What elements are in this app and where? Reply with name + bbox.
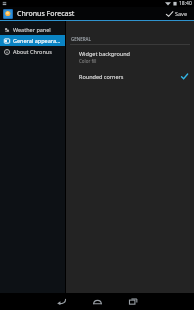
button[interactable]: Widget background (66, 48, 194, 66)
button[interactable]: Back (48, 293, 74, 310)
button[interactable]: Save (163, 8, 191, 19)
staticText: Color fill (79, 58, 97, 64)
staticText: 18:40 (179, 0, 192, 7)
staticText: Rounded corners (79, 73, 124, 80)
staticText: About Chronus (13, 48, 52, 55)
button[interactable]: Weather panel (0, 24, 65, 35)
button[interactable]: Home (84, 293, 110, 310)
button[interactable]: Recents (120, 293, 146, 310)
staticText: Save (175, 10, 188, 17)
button[interactable]: Rounded corners (66, 70, 194, 82)
staticText: GENERAL (71, 36, 91, 42)
other: Rounded corners checkbox (180, 72, 188, 80)
staticText: Widget background (79, 50, 130, 57)
staticText: General appearance (13, 37, 63, 44)
staticText: Chronus Forecast (17, 9, 75, 19)
staticText: Weather panel (13, 26, 51, 33)
button[interactable]: General appearance (0, 35, 65, 46)
button[interactable]: About Chronus (0, 46, 65, 57)
